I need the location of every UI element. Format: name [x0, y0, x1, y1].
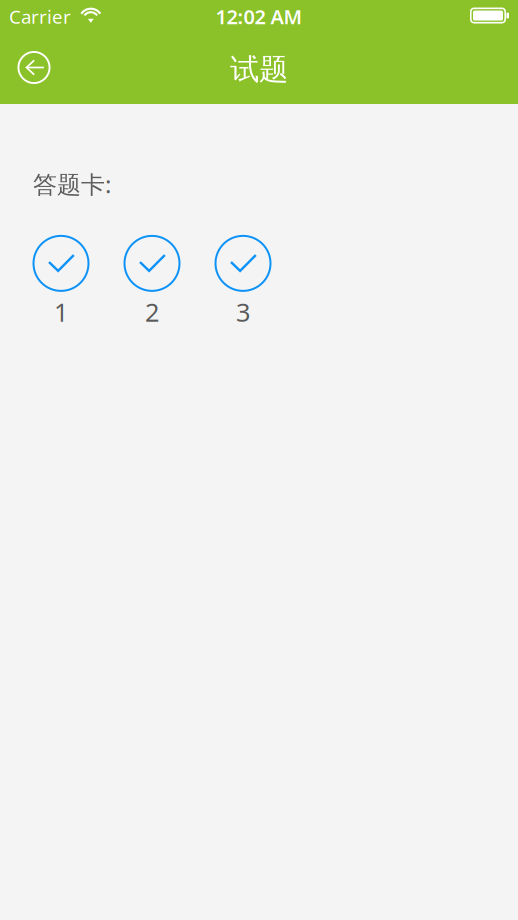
staticText: 1 — [54, 295, 68, 329]
staticText: Carrier — [9, 4, 71, 29]
button[interactable]: Back — [8, 41, 60, 93]
staticText: 3 — [236, 295, 250, 329]
staticText: 试题 — [230, 51, 288, 87]
button[interactable]: 2 — [120, 236, 184, 327]
staticText: 答题卡: — [33, 168, 111, 200]
staticText: 12:02 AM — [215, 3, 302, 30]
button[interactable]: 3 — [211, 236, 275, 327]
button[interactable]: 1 — [29, 236, 93, 327]
staticText: 2 — [145, 295, 159, 329]
